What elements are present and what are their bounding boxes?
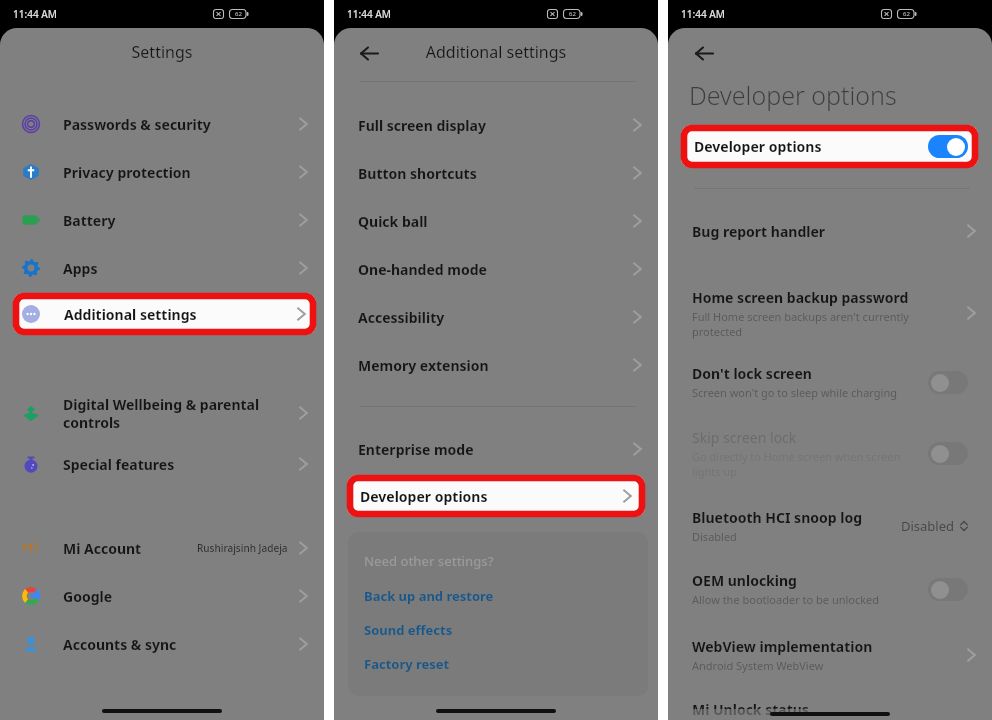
staticText: 11:44 AM xyxy=(347,7,391,21)
staticText: Mi Account xyxy=(63,539,293,558)
staticText: Android System WebView xyxy=(692,658,824,673)
button[interactable]: WebView implementation xyxy=(668,628,992,682)
button[interactable]: Enterprise mode xyxy=(334,425,658,473)
button[interactable]: Don't lock screen xyxy=(668,355,992,409)
staticText: Factory reset xyxy=(364,655,450,673)
staticText: Developer options xyxy=(360,487,488,506)
staticText: Back up and restore xyxy=(364,587,494,605)
staticText: Digital Wellbeing & parental controls xyxy=(63,395,293,432)
staticText: Screen won't go to sleep while charging xyxy=(692,385,897,400)
staticText: 62 xyxy=(903,10,910,18)
staticText: Additional settings xyxy=(334,41,658,63)
button[interactable]: Developer options xyxy=(347,475,645,517)
staticText: Home screen backup password xyxy=(692,288,909,307)
button[interactable]: Quick ball xyxy=(334,197,658,245)
staticText: Mi Unlock status xyxy=(692,700,809,719)
button[interactable]: Toggle off xyxy=(928,442,968,465)
button[interactable]: Google xyxy=(0,572,324,620)
staticText: Full Home screen backups aren't currentl… xyxy=(692,309,909,339)
button[interactable]: Toggle off xyxy=(928,578,968,601)
button[interactable]: Factory reset xyxy=(364,655,450,673)
staticText: Additional settings xyxy=(64,305,197,324)
staticText: Special features xyxy=(63,455,293,474)
staticText: 62 xyxy=(235,10,242,18)
button[interactable]: Accounts & sync xyxy=(0,620,324,668)
staticText: Button shortcuts xyxy=(358,164,477,183)
button[interactable]: Full screen display xyxy=(334,101,658,149)
button[interactable]: Skip screen lock xyxy=(668,420,992,486)
button[interactable]: Accessibility xyxy=(334,293,658,341)
button[interactable]: Home screen backup password xyxy=(668,280,992,346)
staticText: Bluetooth HCI snoop log xyxy=(692,508,863,527)
staticText: 62 xyxy=(569,10,576,18)
button[interactable]: Additional settings xyxy=(13,293,316,335)
button[interactable]: Passwords & security xyxy=(0,100,324,148)
button[interactable]: Toggle off xyxy=(928,371,968,394)
button[interactable]: Back up and restore xyxy=(364,587,494,605)
staticText: WebView implementation xyxy=(692,637,873,656)
staticText: 11:44 AM xyxy=(681,7,725,21)
button[interactable]: Bluetooth HCI snoop log xyxy=(668,499,992,553)
button[interactable]: Digital Wellbeing & parental controls xyxy=(0,389,324,437)
staticText: Privacy protection xyxy=(63,163,293,182)
button[interactable]: Apps xyxy=(0,244,324,292)
staticText: Google xyxy=(63,587,293,606)
staticText: Bug report handler xyxy=(692,222,826,241)
staticText: Quick ball xyxy=(358,212,428,231)
staticText: 11:44 AM xyxy=(13,7,57,21)
button[interactable]: One-handed mode xyxy=(334,245,658,293)
button[interactable]: Privacy protection xyxy=(0,148,324,196)
staticText: Need other settings? xyxy=(364,552,494,570)
button[interactable]: Bug report handler xyxy=(668,205,992,257)
staticText: One-handed mode xyxy=(358,260,487,279)
staticText: OEM unlocking xyxy=(692,571,797,590)
staticText: Battery xyxy=(63,211,293,230)
staticText: Developer options xyxy=(694,137,822,156)
button[interactable]: Developer options xyxy=(681,125,978,168)
staticText: Apps xyxy=(63,259,293,278)
staticText: Memory extension xyxy=(358,356,489,375)
staticText: Accessibility xyxy=(358,308,445,327)
staticText: Disabled xyxy=(901,517,955,535)
staticText: Sound effects xyxy=(364,621,453,639)
staticText: Full screen display xyxy=(358,116,486,135)
button[interactable]: Back xyxy=(352,36,386,70)
button[interactable]: OEM unlocking xyxy=(668,562,992,616)
button[interactable]: Back xyxy=(687,36,721,70)
staticText: Don't lock screen xyxy=(692,364,812,383)
staticText: Disabled xyxy=(692,529,737,544)
button[interactable]: Special features xyxy=(0,440,324,488)
button[interactable]: Memory extension xyxy=(334,341,658,389)
staticText: Accounts & sync xyxy=(63,635,293,654)
staticText: Enterprise mode xyxy=(358,440,474,459)
button[interactable]: Sound effects xyxy=(364,621,453,639)
staticText: Skip screen lock xyxy=(692,428,797,447)
staticText: Passwords & security xyxy=(63,115,293,134)
staticText: Settings xyxy=(0,41,324,63)
staticText: Developer options xyxy=(689,78,897,112)
button[interactable]: Mi Account xyxy=(0,524,324,572)
staticText: Rushirajsinh Jadeja xyxy=(197,541,288,555)
button[interactable]: Toggle on xyxy=(928,135,968,158)
button[interactable]: Button shortcuts xyxy=(334,149,658,197)
staticText: Allow the bootloader to be unlocked xyxy=(692,592,880,607)
button[interactable]: Battery xyxy=(0,196,324,244)
